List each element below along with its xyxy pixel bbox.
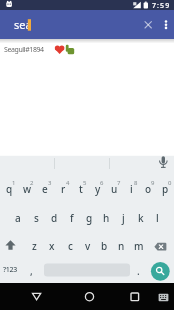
staticText: t: [79, 182, 83, 196]
button[interactable]: 5: [72, 172, 89, 200]
staticText: a: [15, 211, 21, 225]
staticText: 0: [168, 179, 172, 187]
button[interactable]: n: [113, 227, 130, 255]
staticText: sea: [14, 17, 32, 32]
staticText: o: [145, 182, 152, 196]
button[interactable]: k: [132, 200, 149, 227]
button[interactable]: [151, 262, 170, 281]
button[interactable]: x: [43, 227, 61, 255]
staticText: b: [101, 239, 108, 253]
staticText: u: [111, 182, 118, 196]
button[interactable]: 0: [157, 172, 174, 200]
staticText: .: [137, 264, 140, 278]
button[interactable]: 8: [123, 172, 140, 200]
staticText: ,: [30, 264, 33, 278]
staticText: ?123: [3, 265, 17, 275]
button[interactable]: s: [27, 200, 45, 227]
staticText: v: [85, 239, 91, 253]
button[interactable]: c: [61, 227, 79, 255]
button[interactable]: h: [98, 200, 115, 227]
button[interactable]: 3: [36, 172, 54, 200]
button[interactable]: 9: [140, 172, 157, 200]
button[interactable]: ,: [23, 255, 40, 283]
staticText: y: [95, 182, 101, 196]
staticText: z: [32, 239, 37, 253]
staticText: q: [6, 182, 13, 196]
button[interactable]: l: [149, 200, 166, 227]
button[interactable]: 2: [18, 172, 36, 200]
staticText: w: [23, 182, 32, 196]
staticText: d: [51, 211, 58, 225]
staticText: 2: [30, 179, 34, 187]
staticText: r: [61, 182, 66, 196]
button[interactable]: 7: [106, 172, 123, 200]
button[interactable]: z: [25, 227, 43, 255]
staticText: f: [70, 211, 74, 225]
staticText: i: [130, 182, 133, 196]
staticText: 7:59: [152, 1, 171, 11]
button[interactable]: m: [130, 227, 147, 255]
staticText: p: [162, 182, 169, 196]
staticText: 6: [100, 179, 104, 187]
staticText: 1: [12, 179, 16, 187]
button[interactable]: a: [9, 200, 27, 227]
button[interactable]: [0, 39, 174, 58]
staticText: j: [122, 211, 125, 225]
staticText: l: [156, 211, 159, 225]
button[interactable]: f: [63, 200, 81, 227]
button[interactable]: ?123: [0, 255, 20, 283]
staticText: e: [42, 182, 48, 196]
staticText: x: [49, 239, 55, 253]
staticText: 9: [151, 179, 155, 187]
button[interactable]: b: [96, 227, 113, 255]
button[interactable]: g: [81, 200, 98, 227]
staticText: g: [86, 211, 93, 225]
staticText: Seagull#1894: [4, 45, 44, 55]
staticText: s: [34, 211, 39, 225]
button[interactable]: d: [45, 200, 63, 227]
staticText: 5: [83, 179, 87, 187]
staticText: 4: [66, 179, 70, 187]
button[interactable]: 4: [54, 172, 72, 200]
staticText: n: [118, 239, 125, 253]
staticText: 8: [134, 179, 138, 187]
button[interactable]: 6: [89, 172, 106, 200]
button[interactable]: v: [79, 227, 96, 255]
button[interactable]: [0, 10, 174, 39]
staticText: 7: [117, 179, 121, 187]
staticText: 3: [48, 179, 52, 187]
button[interactable]: j: [115, 200, 132, 227]
staticText: m: [134, 239, 144, 253]
staticText: k: [138, 211, 144, 225]
button[interactable]: .: [130, 255, 147, 283]
staticText: c: [68, 239, 73, 253]
button[interactable]: 1: [0, 172, 18, 200]
staticText: h: [103, 211, 110, 225]
